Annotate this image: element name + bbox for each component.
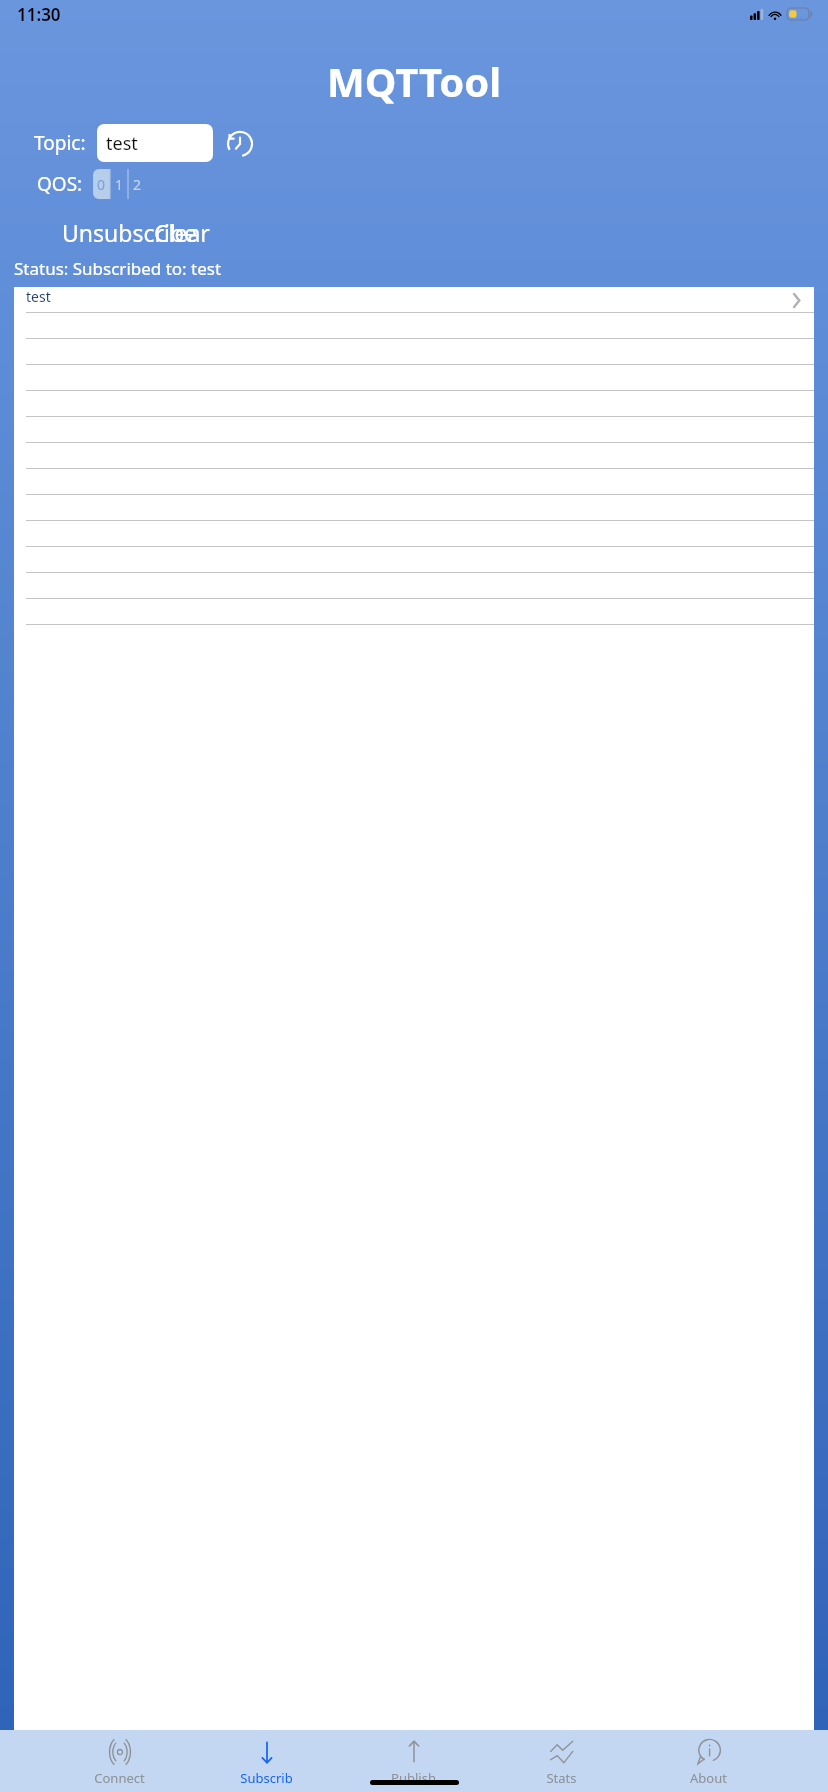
button[interactable]: About bbox=[681, 1737, 736, 1787]
button[interactable]: Topic history bbox=[221, 124, 259, 162]
button[interactable]: 2 bbox=[128, 169, 146, 199]
button[interactable]: Stats bbox=[534, 1737, 589, 1787]
staticText: Clear bbox=[154, 217, 210, 243]
staticText: Topic: bbox=[34, 130, 86, 156]
button[interactable]: test bbox=[97, 124, 213, 162]
button[interactable]: Clear bbox=[148, 215, 216, 245]
staticText: Subscribe bbox=[239, 1769, 294, 1792]
staticText: test bbox=[26, 287, 51, 306]
button[interactable]: 0 bbox=[93, 169, 110, 199]
staticText: 2 bbox=[133, 175, 142, 194]
button[interactable]: test bbox=[14, 287, 814, 313]
button[interactable] bbox=[14, 391, 814, 417]
staticText: have a test bbox=[26, 308, 98, 313]
staticText: test bbox=[106, 131, 138, 156]
button[interactable] bbox=[14, 599, 814, 625]
staticText: MQTTool bbox=[327, 54, 502, 108]
staticText: Publish bbox=[391, 1769, 436, 1787]
button[interactable] bbox=[14, 339, 814, 365]
button[interactable] bbox=[14, 495, 814, 521]
button[interactable]: Subscribe bbox=[239, 1737, 294, 1792]
button[interactable]: Publish bbox=[386, 1737, 441, 1787]
staticText: Unsubscribe bbox=[62, 217, 198, 243]
button[interactable] bbox=[14, 573, 814, 599]
button[interactable]: Unsubscribe bbox=[56, 215, 204, 245]
staticText: About bbox=[690, 1769, 727, 1787]
button[interactable] bbox=[14, 313, 814, 339]
staticText: 1 bbox=[115, 175, 124, 194]
button[interactable] bbox=[14, 469, 814, 495]
button[interactable]: 1 bbox=[110, 169, 128, 199]
button[interactable] bbox=[14, 417, 814, 443]
staticText: Status: Subscribed to: test bbox=[14, 257, 222, 280]
staticText: Connect bbox=[94, 1769, 145, 1787]
button[interactable] bbox=[14, 365, 814, 391]
staticText: QOS: bbox=[37, 171, 83, 197]
staticText: 11:30 bbox=[17, 3, 61, 26]
staticText: 0 bbox=[97, 175, 106, 194]
button[interactable] bbox=[14, 443, 814, 469]
button[interactable] bbox=[14, 521, 814, 547]
staticText: Stats bbox=[546, 1769, 577, 1787]
button[interactable] bbox=[14, 547, 814, 573]
button[interactable]: Connect bbox=[92, 1737, 147, 1787]
